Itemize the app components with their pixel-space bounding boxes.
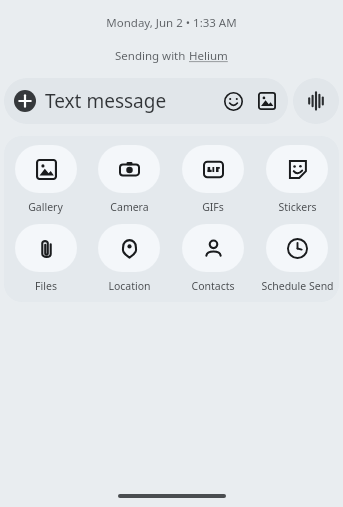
staticText: Gallery	[28, 200, 63, 214]
button[interactable]: Camera	[87, 145, 171, 214]
staticText: Helium	[189, 48, 228, 64]
button[interactable]: Add attachment	[14, 90, 36, 112]
staticText: Files	[35, 279, 57, 293]
staticText: Monday, Jun 2 • 1:33 AM	[0, 15, 343, 31]
staticText: Contacts	[191, 279, 235, 293]
button[interactable]: Files	[4, 224, 87, 293]
staticText: Schedule Send	[261, 279, 334, 293]
button[interactable]: Gallery	[4, 145, 87, 214]
staticText: Location	[108, 279, 151, 293]
button[interactable]: Emoji	[222, 90, 244, 112]
button[interactable]: GIFs	[171, 145, 255, 214]
button[interactable]: Insert image	[256, 90, 278, 112]
button[interactable]: Record voice message	[293, 78, 339, 124]
button[interactable]: Add attachment	[4, 78, 288, 124]
button[interactable]: Helium	[189, 48, 228, 64]
staticText: Stickers	[278, 200, 317, 214]
button[interactable]: Contacts	[171, 224, 255, 293]
staticText: Sending with	[115, 48, 189, 64]
staticText: Text message	[45, 88, 222, 114]
button[interactable]: Schedule Send	[255, 224, 339, 293]
button[interactable]: Location	[87, 224, 171, 293]
button[interactable]: Stickers	[255, 145, 339, 214]
staticText: Camera	[110, 200, 149, 214]
staticText: GIFs	[202, 200, 224, 214]
